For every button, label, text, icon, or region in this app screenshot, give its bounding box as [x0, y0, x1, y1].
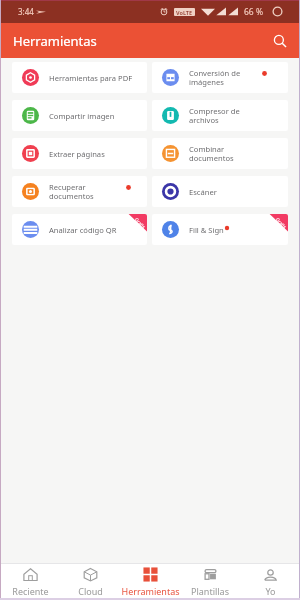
staticText: Reciente [12, 585, 49, 597]
staticText: Gratis [275, 216, 288, 230]
staticText: Extraer páginas [49, 149, 105, 159]
button[interactable]: Recuperar documentos [12, 176, 147, 207]
button[interactable]: Herramientas [120, 564, 180, 600]
staticText: 3:44 [18, 6, 34, 17]
staticText: Gratis [134, 216, 147, 230]
button[interactable]: Analizar código QR [12, 214, 147, 245]
staticText: Recuperar documentos [49, 182, 94, 201]
button[interactable]: Escáner [152, 176, 288, 207]
button[interactable]: Combinar documentos [152, 138, 288, 169]
staticText: Herramientas [13, 32, 97, 50]
staticText: Escáner [189, 187, 217, 197]
button[interactable]: Search [269, 30, 291, 52]
staticText: Fill & Sign [189, 225, 224, 235]
staticText: Conversión de imágenes [189, 68, 241, 87]
staticText: Compresor de archivos [189, 106, 240, 125]
button[interactable]: Herramientas para PDF [12, 62, 147, 93]
staticText: Analizar código QR [49, 225, 117, 235]
button[interactable]: Conversión de imágenes [152, 62, 288, 93]
button[interactable]: Yo [240, 564, 300, 600]
button[interactable]: Reciente [0, 564, 60, 600]
staticText: Plantillas [191, 585, 229, 597]
staticText: Herramientas para PDF [49, 73, 133, 83]
staticText: Cloud [78, 585, 103, 597]
staticText: 66 % [244, 6, 263, 18]
button[interactable]: Cloud [60, 564, 120, 600]
button[interactable]: Fill & Sign [152, 214, 288, 245]
button[interactable]: Plantillas [180, 564, 240, 600]
staticText: Combinar documentos [189, 144, 234, 163]
button[interactable]: Compresor de archivos [152, 100, 288, 131]
button[interactable]: Compartir imagen [12, 100, 147, 131]
staticText: Herramientas [121, 585, 180, 597]
staticText: Compartir imagen [49, 111, 115, 121]
staticText: Yo [265, 585, 276, 597]
button[interactable]: Extraer páginas [12, 138, 147, 169]
staticText: VoLTE [176, 9, 193, 16]
